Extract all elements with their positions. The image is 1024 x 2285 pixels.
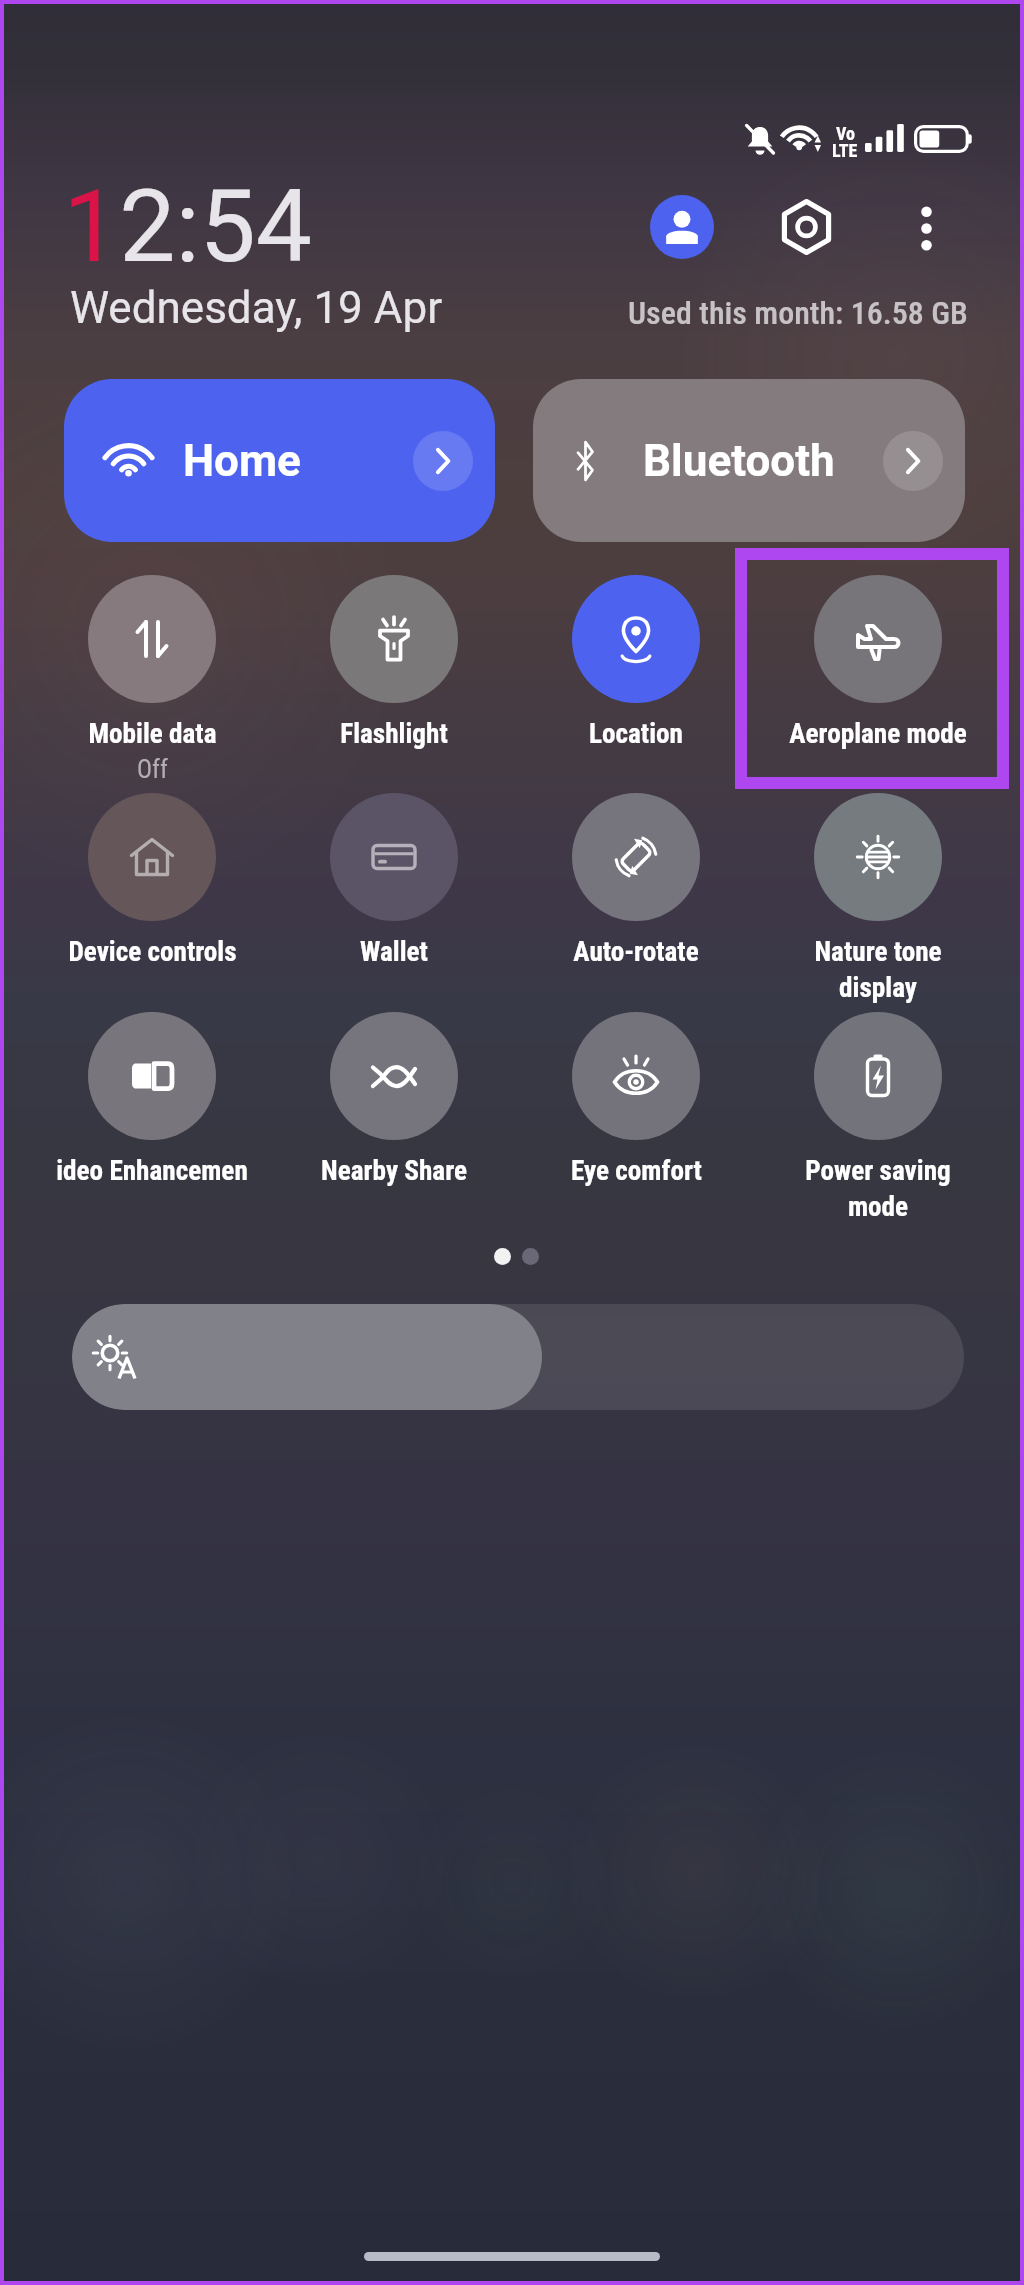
button[interactable]: More options [889,191,963,265]
staticText: Wallet [360,936,428,968]
staticText: LTE [832,140,858,161]
staticText: 12:54 [63,168,313,285]
staticText: Eye comfort [571,1155,702,1187]
button[interactable]: Mobile data [31,575,273,784]
button[interactable]: Flashlight [273,575,515,750]
staticText: Device controls [68,936,237,968]
staticText: Home [183,435,301,487]
staticText: Flashlight [340,718,448,750]
button[interactable]: Bluetooth [533,379,965,542]
staticText: Location [589,718,683,750]
button[interactable]: Eye comfort [515,1012,757,1187]
staticText: Used this month: 16.58 GB [628,294,968,332]
staticText: Off [137,755,168,784]
staticText: ideo Enhancemen [56,1155,248,1187]
button[interactable]: Wallet [273,793,515,968]
staticText: Aeroplane mode [789,718,967,750]
button[interactable]: Nature tone display [757,793,999,1003]
staticText: Power saving mode [805,1155,951,1222]
button[interactable]: Aeroplane mode [757,575,999,750]
button[interactable]: Home [64,379,495,542]
staticText: Mobile data [88,718,217,750]
button[interactable]: Brightness [72,1304,964,1410]
staticText: Nearby Share [321,1155,467,1187]
button[interactable]: ideo Enhancemen [31,1012,273,1187]
button[interactable]: Auto-rotate [515,793,757,968]
staticText: Bluetooth [643,435,835,487]
staticText: Nature tone display [814,936,942,1003]
staticText: Auto-rotate [573,936,699,968]
button[interactable]: Settings [769,190,843,264]
button[interactable]: User profile [650,195,714,259]
button[interactable]: Nearby Share [273,1012,515,1187]
button[interactable]: Device controls [31,793,273,968]
button[interactable]: Location [515,575,757,750]
staticText: Wednesday, 19 Apr [70,282,443,334]
button[interactable]: Power saving mode [757,1012,999,1222]
staticText: Vo [836,123,855,144]
